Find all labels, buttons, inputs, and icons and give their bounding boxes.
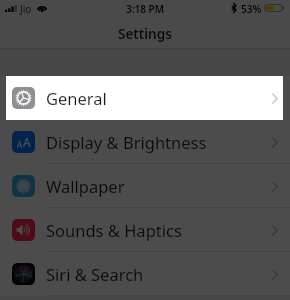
staticText: General [46,87,107,109]
staticText: Siri & Search [46,263,144,285]
staticText: Display & Brightness [46,131,207,153]
staticText: A [17,139,23,150]
staticText: 3:18 PM [126,2,164,16]
staticText: Jio [20,2,32,16]
staticText: 53% [241,2,262,16]
button[interactable]: Wallpaper [0,164,290,208]
staticText: Settings [118,25,172,43]
button[interactable]: Siri & Search [0,252,290,296]
staticText: Sounds & Haptics [46,219,182,241]
button[interactable]: Sounds & Haptics [0,208,290,252]
staticText: A [23,134,31,150]
button[interactable]: A [0,120,290,164]
staticText: Wallpaper [46,175,125,197]
button[interactable]: General [0,76,290,120]
